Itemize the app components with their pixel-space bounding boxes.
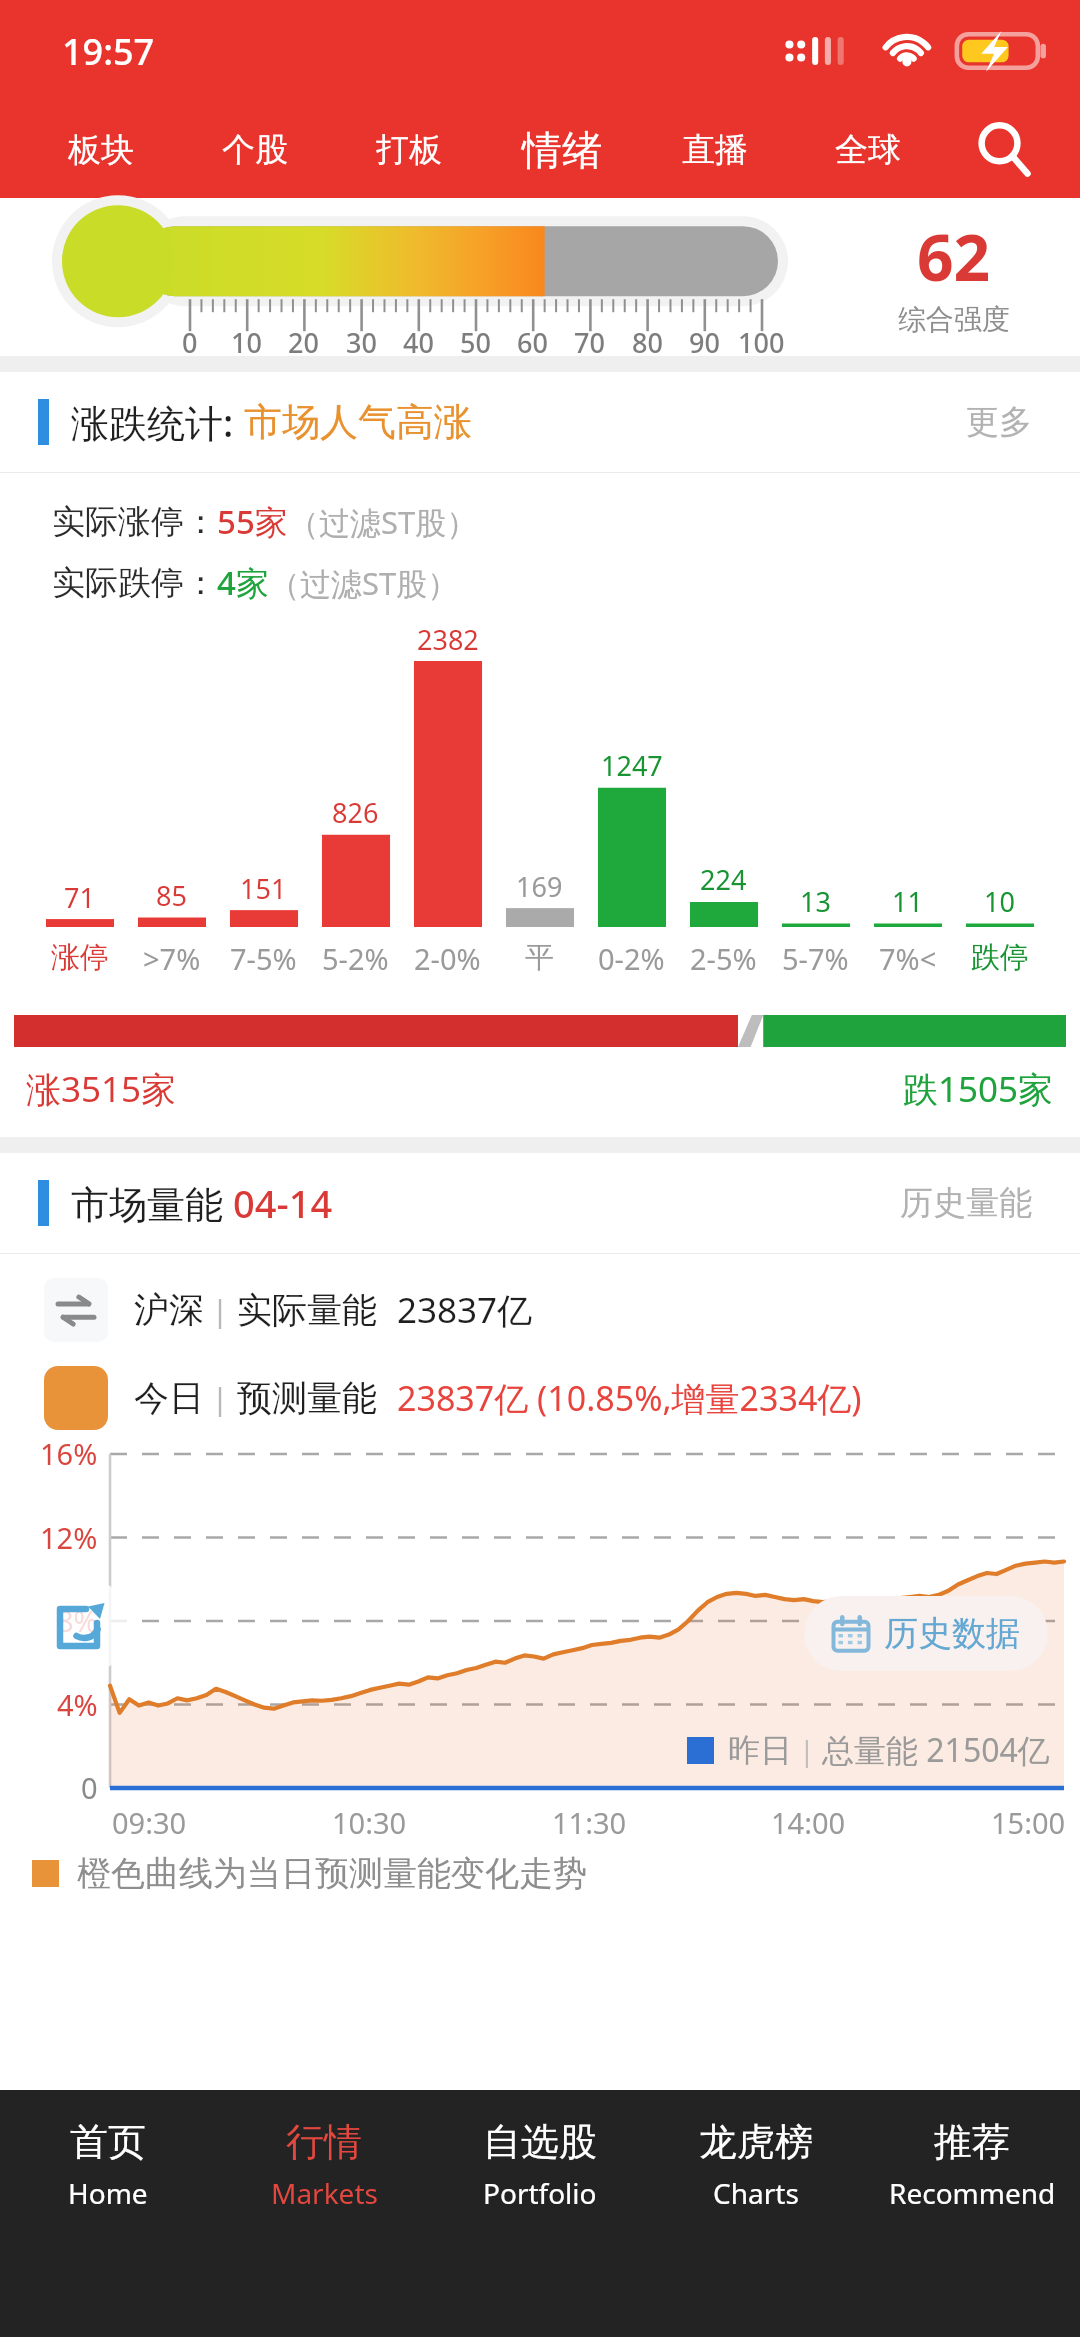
staticText: 跌1505家 [903, 1065, 1054, 1113]
button[interactable]: 推荐 [864, 2090, 1080, 2337]
staticText: 55家 [217, 499, 288, 544]
staticText: 龙虎榜 [699, 2118, 813, 2166]
button[interactable]: 历史数据 [804, 1596, 1048, 1671]
staticText: 推荐 [934, 2118, 1010, 2166]
staticText: 历史量能 [900, 1182, 1032, 1224]
staticText: 23837亿 [397, 1286, 533, 1334]
staticText: 跌停 [971, 939, 1029, 976]
staticText: 80 [632, 324, 663, 361]
staticText: | [204, 1290, 237, 1331]
staticText: 今日 [134, 1376, 204, 1420]
staticText: 04-14 [233, 1177, 333, 1229]
button[interactable]: 首页 [0, 2090, 216, 2337]
button[interactable]: 今日 [44, 1366, 862, 1430]
staticText: Home [68, 2174, 148, 2212]
staticText: 5-7% [782, 939, 849, 978]
staticText: Markets [271, 2174, 378, 2212]
staticText: 169 [516, 868, 563, 905]
staticText: 10 [984, 883, 1015, 920]
staticText: 历史数据 [884, 1612, 1020, 1655]
button[interactable]: 全球 [791, 102, 944, 198]
staticText: 85 [156, 877, 187, 914]
staticText: 23837亿 (10.85%,增量2334亿) [397, 1375, 862, 1421]
staticText: 09:30 [112, 1803, 187, 1842]
staticText: 实际涨停： [52, 501, 217, 543]
button[interactable]: Search [962, 108, 1046, 192]
staticText: 14:00 [771, 1803, 846, 1842]
staticText: （过滤ST股） [269, 562, 459, 604]
staticText: 全球 [835, 129, 901, 171]
staticText: 实际量能 [237, 1288, 377, 1332]
staticText: 0-2% [598, 939, 665, 978]
staticText: 打板 [376, 129, 442, 171]
staticText: Recommend [889, 2174, 1056, 2212]
button[interactable]: 板块 [24, 102, 178, 198]
button[interactable]: 龙虎榜 [648, 2090, 864, 2337]
staticText: 市场人气高涨 [244, 398, 472, 446]
staticText: 60 [517, 324, 548, 361]
staticText: 自选股 [483, 2118, 597, 2166]
staticText: 50 [460, 324, 491, 361]
button[interactable]: History [890, 1172, 1042, 1234]
button[interactable]: 实际跌停： [52, 560, 459, 605]
staticText: 涨跌统计: [71, 396, 244, 448]
staticText: 0 [182, 324, 198, 361]
button[interactable]: 打板 [332, 102, 485, 198]
staticText: 涨3515家 [26, 1065, 177, 1113]
staticText: 151 [240, 870, 287, 907]
staticText: 个股 [222, 129, 288, 171]
button[interactable]: 沪深 [44, 1278, 533, 1342]
staticText: 4% [57, 1685, 98, 1724]
button[interactable]: 行情 [216, 2090, 432, 2337]
staticText: | [204, 1378, 237, 1419]
staticText: 直播 [682, 129, 748, 171]
button[interactable]: 情绪 [485, 102, 638, 198]
staticText: 224 [700, 861, 747, 898]
staticText: 40 [403, 324, 434, 361]
staticText: 30 [346, 324, 377, 361]
staticText: 11:30 [552, 1803, 627, 1842]
staticText: 橙色曲线为当日预测量能变化走势 [77, 1852, 587, 1895]
staticText: 昨日 [728, 1730, 792, 1770]
button[interactable]: 直播 [638, 102, 791, 198]
staticText: 行情 [286, 2118, 362, 2166]
staticText: 平 [525, 939, 554, 976]
button[interactable] [14, 1015, 1066, 1047]
staticText: 7%< [879, 939, 937, 978]
button[interactable]: 自选股 [432, 2090, 648, 2337]
staticText: 4家 [217, 560, 269, 605]
staticText: 19:57 [62, 27, 155, 76]
staticText: Portfolio [483, 2174, 597, 2212]
staticText: 综合强度 [898, 302, 1010, 337]
staticText: 首页 [70, 2118, 146, 2166]
staticText: 7-5% [230, 939, 297, 978]
staticText: 13 [800, 883, 831, 920]
staticText: 实际跌停： [52, 562, 217, 604]
staticText: Charts [713, 2174, 799, 2212]
staticText: 12% [40, 1518, 98, 1557]
staticText: 0 [81, 1768, 98, 1807]
button[interactable]: 个股 [178, 102, 332, 198]
staticText: 11 [892, 883, 923, 920]
staticText: 90 [689, 324, 720, 361]
staticText: 涨停 [51, 939, 109, 976]
staticText: | [792, 1731, 822, 1769]
staticText: 市场量能 [71, 1177, 233, 1229]
staticText: 10:30 [332, 1803, 407, 1842]
button[interactable]: 实际涨停： [52, 499, 478, 544]
staticText: 板块 [68, 129, 134, 171]
staticText: 情绪 [522, 125, 602, 175]
staticText: 10 [231, 324, 262, 361]
button[interactable]: Share [30, 1576, 130, 1676]
staticText: 1247 [601, 747, 663, 784]
staticText: 62 [917, 213, 991, 300]
staticText: 更多 [966, 401, 1032, 443]
button[interactable]: More [956, 391, 1042, 453]
staticText: 16% [40, 1434, 98, 1473]
staticText: （过滤ST股） [288, 501, 478, 543]
staticText: 71 [64, 879, 95, 916]
staticText: 20 [288, 324, 319, 361]
staticText: 沪深 [134, 1288, 204, 1332]
staticText: 2382 [417, 621, 479, 658]
staticText: 826 [332, 794, 379, 831]
